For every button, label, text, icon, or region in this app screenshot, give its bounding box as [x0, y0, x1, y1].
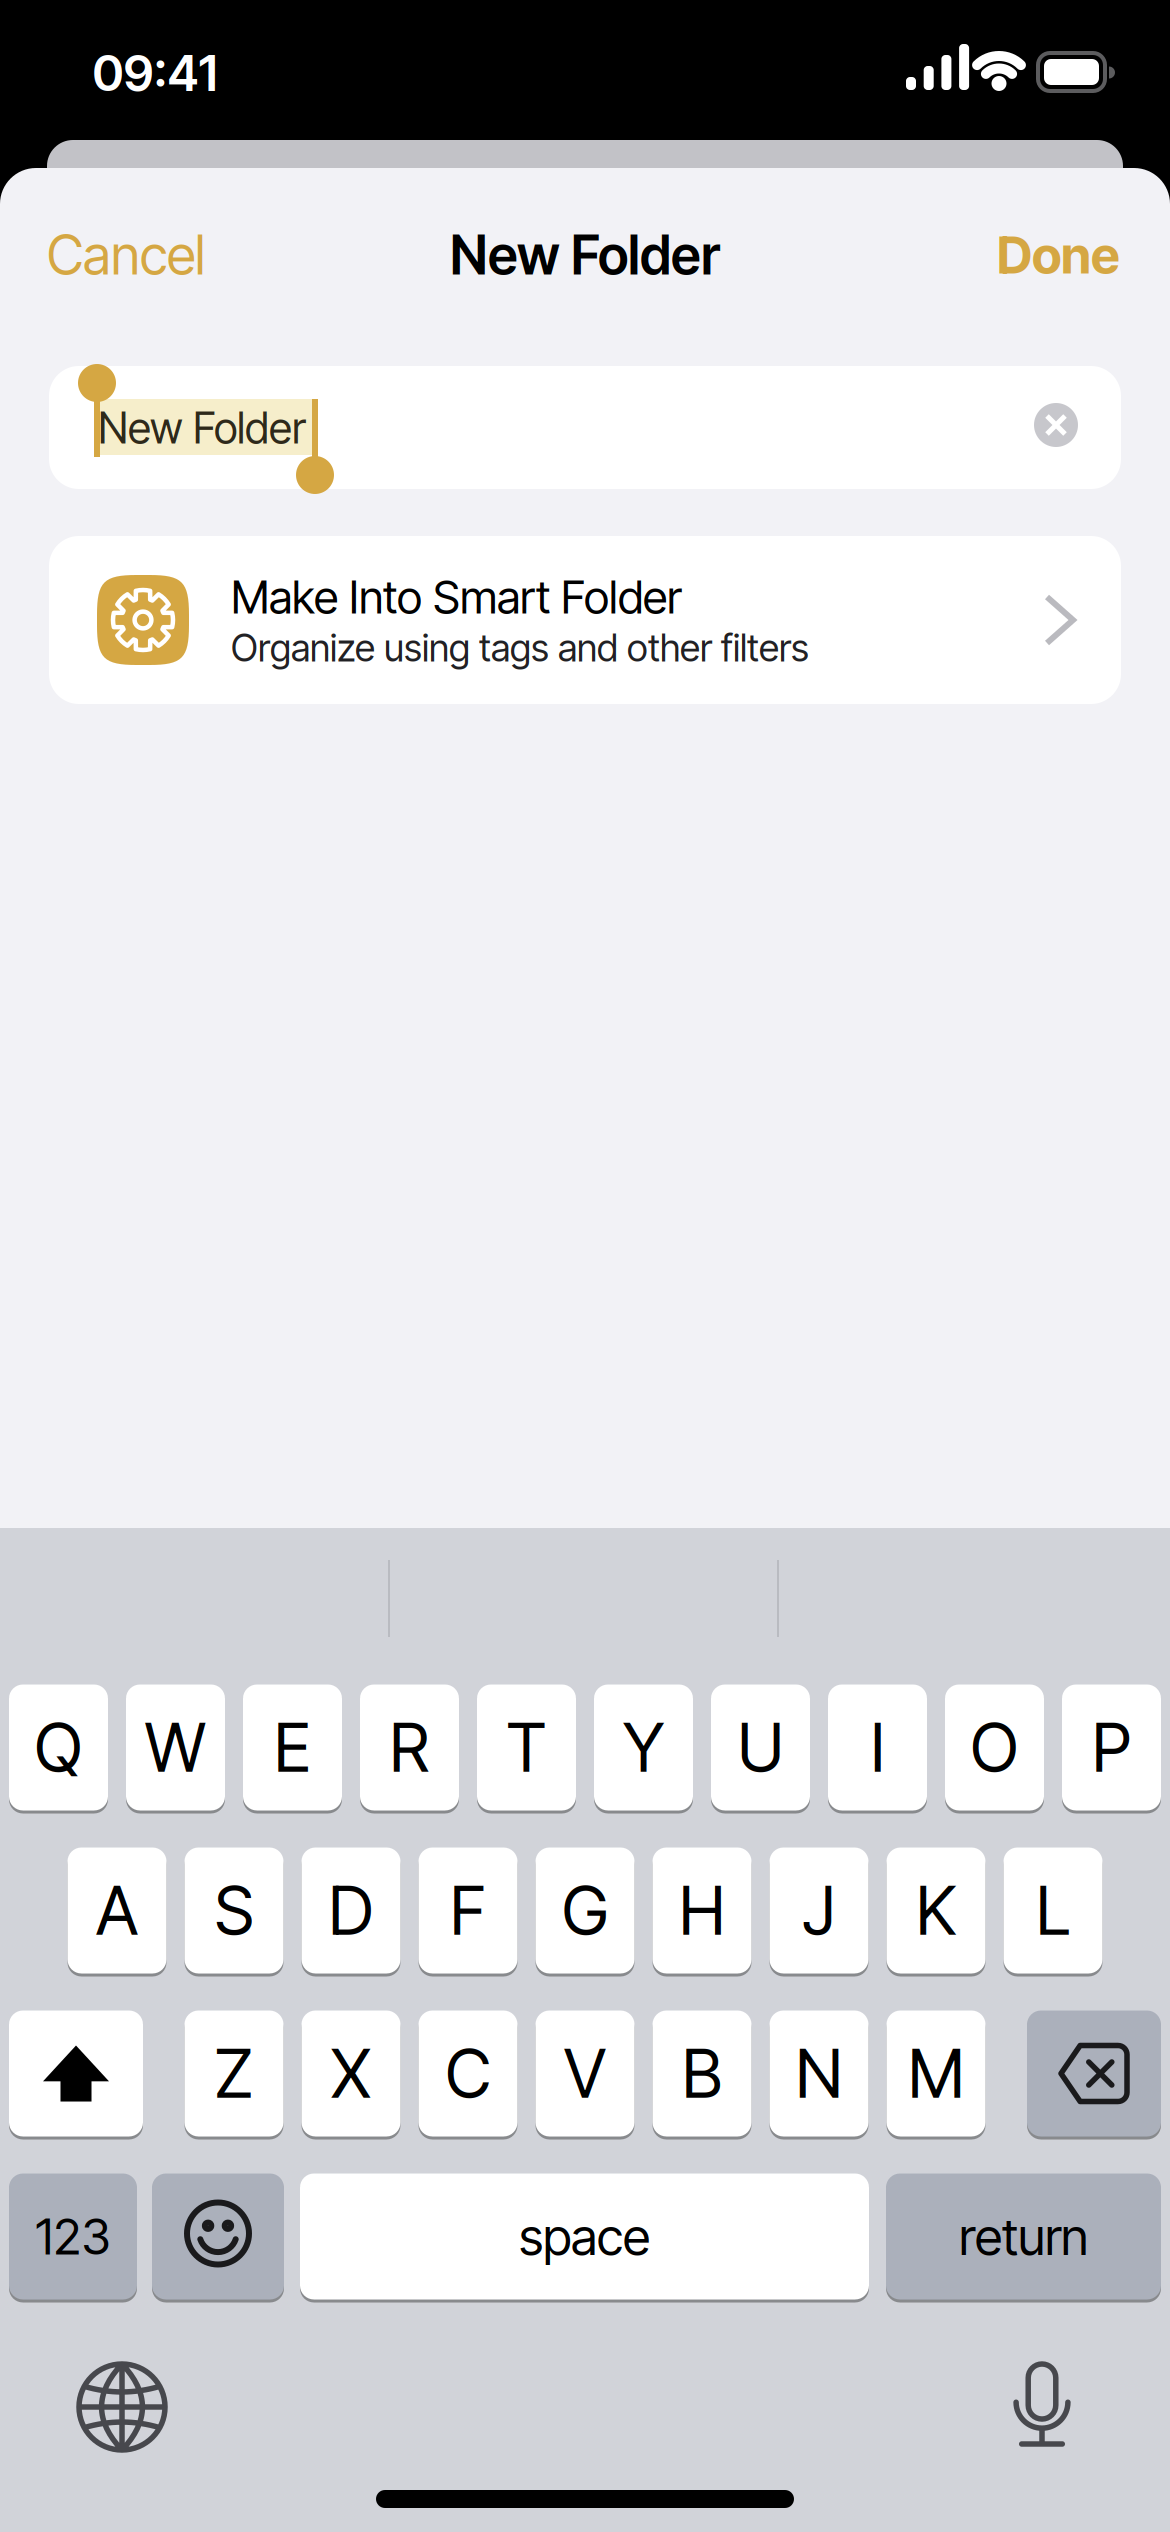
staticText: Organize using tags and other filters: [231, 626, 809, 670]
staticText: Y: [623, 1708, 664, 1787]
button[interactable]: Z: [184, 2009, 283, 2138]
button[interactable]: L: [1003, 1846, 1102, 1975]
staticText: T: [506, 1708, 546, 1787]
button[interactable]: Y: [594, 1683, 693, 1812]
staticText: B: [682, 2034, 722, 2113]
staticText: X: [331, 2034, 371, 2113]
button[interactable]: H: [652, 1846, 751, 1975]
button[interactable]: Delete: [1027, 2009, 1161, 2138]
staticText: Q: [34, 1708, 82, 1787]
staticText: C: [445, 2034, 490, 2113]
staticText: Z: [214, 2034, 253, 2113]
button[interactable]: B: [652, 2009, 751, 2138]
staticText: New Folder: [450, 223, 720, 286]
staticText: L: [1036, 1871, 1070, 1950]
button[interactable]: space: [300, 2172, 869, 2301]
button[interactable]: P: [1062, 1683, 1161, 1812]
button[interactable]: Make Into Smart Folder: [49, 536, 1121, 704]
button[interactable]: M: [886, 2009, 985, 2138]
staticText: M: [908, 2034, 964, 2113]
button[interactable]: F: [418, 1846, 517, 1975]
staticText: W: [145, 1708, 206, 1787]
button[interactable]: Dictate: [1016, 2364, 1068, 2450]
staticText: 123: [35, 2207, 110, 2266]
button[interactable]: O: [945, 1683, 1044, 1812]
button[interactable]: V: [535, 2009, 634, 2138]
staticText: U: [737, 1708, 783, 1787]
button[interactable]: E: [243, 1683, 342, 1812]
staticText: J: [802, 1871, 835, 1950]
button[interactable]: J: [769, 1846, 868, 1975]
button[interactable]: Done: [940, 215, 1120, 295]
staticText: 09:41: [92, 44, 217, 102]
staticText: S: [214, 1871, 253, 1950]
staticText: H: [679, 1871, 725, 1950]
button[interactable]: U: [711, 1683, 810, 1812]
staticText: I: [870, 1708, 884, 1787]
staticText: P: [1092, 1708, 1131, 1787]
staticText: Cancel: [47, 223, 205, 286]
button[interactable]: D: [301, 1846, 400, 1975]
button[interactable]: Next keyboard: [79, 2364, 165, 2450]
button[interactable]: I: [828, 1683, 927, 1812]
button[interactable]: S: [184, 1846, 283, 1975]
staticText: K: [916, 1871, 956, 1950]
button[interactable]: R: [360, 1683, 459, 1812]
staticText: Make Into Smart Folder: [231, 570, 682, 624]
button[interactable]: N: [769, 2009, 868, 2138]
staticText: return: [959, 2207, 1088, 2266]
button[interactable]: C: [418, 2009, 517, 2138]
button[interactable]: Clear text: [1026, 395, 1086, 455]
staticText: A: [96, 1871, 138, 1950]
button[interactable]: K: [886, 1846, 985, 1975]
button[interactable]: T: [477, 1683, 576, 1812]
staticText: G: [562, 1871, 608, 1950]
staticText: Done: [997, 225, 1120, 285]
staticText: New Folder: [98, 403, 306, 453]
staticText: R: [389, 1708, 429, 1787]
button[interactable]: Shift: [9, 2009, 143, 2138]
button[interactable]: 123: [9, 2172, 137, 2301]
button[interactable]: G: [535, 1846, 634, 1975]
button[interactable]: A: [67, 1846, 166, 1975]
button[interactable]: Emoji: [152, 2172, 284, 2301]
button[interactable]: W: [126, 1683, 225, 1812]
button[interactable]: X: [301, 2009, 400, 2138]
staticText: N: [795, 2034, 842, 2113]
staticText: V: [564, 2034, 606, 2113]
staticText: F: [450, 1871, 486, 1950]
staticText: E: [274, 1708, 311, 1787]
button[interactable]: return: [886, 2172, 1161, 2301]
staticText: O: [970, 1708, 1018, 1787]
staticText: space: [519, 2207, 650, 2266]
button[interactable]: Q: [9, 1683, 108, 1812]
staticText: D: [328, 1871, 373, 1950]
button[interactable]: Cancel: [47, 215, 277, 295]
